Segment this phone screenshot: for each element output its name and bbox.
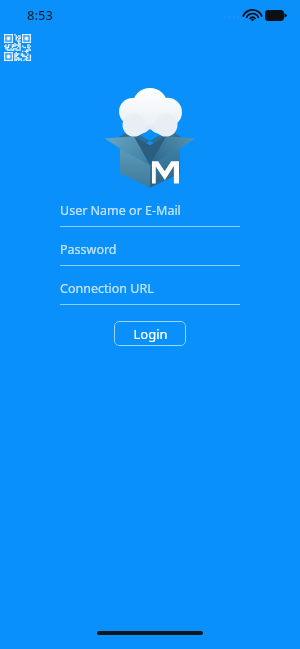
button[interactable]: Connection URL — [60, 280, 240, 305]
button[interactable]: Scan QR code — [0, 30, 34, 64]
staticText: Password — [60, 241, 117, 258]
staticText: Login — [133, 325, 168, 343]
staticText: Connection URL — [60, 280, 154, 297]
button[interactable]: Password — [60, 241, 240, 266]
staticText: User Name or E-Mail — [60, 202, 181, 219]
button[interactable]: Login — [114, 321, 186, 346]
staticText: 8:53 — [27, 6, 53, 24]
button[interactable]: User Name or E-Mail — [60, 202, 240, 227]
